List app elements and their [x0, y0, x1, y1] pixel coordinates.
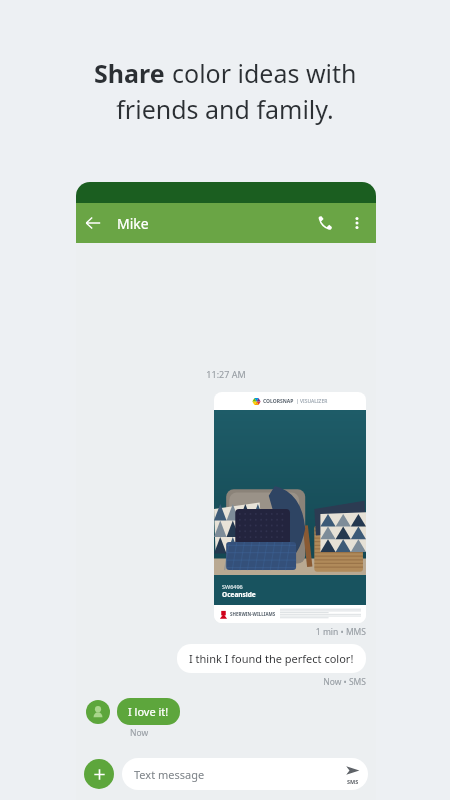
staticText: Share	[94, 56, 172, 90]
button[interactable]: I love it!	[117, 698, 180, 725]
staticText: Oceanside	[222, 590, 256, 599]
staticText: 1 min • MMS	[86, 626, 366, 638]
button[interactable]: More options	[342, 208, 372, 238]
button[interactable]: ColorSnap Visualizer photo	[214, 392, 366, 623]
button[interactable]: Text message	[122, 758, 368, 790]
staticText: friends and family.	[116, 92, 334, 126]
staticText: I love it!	[128, 704, 169, 719]
staticText: Mike	[117, 214, 149, 233]
staticText: SHERWIN-WILLIAMS	[230, 611, 276, 617]
staticText: | VISUALIZER	[296, 398, 328, 405]
button[interactable]: Call	[308, 206, 342, 240]
staticText: SMS	[347, 778, 359, 785]
button[interactable]: Add attachment	[84, 759, 114, 789]
staticText: SW6496	[222, 583, 243, 590]
staticText: COLORSNAP	[263, 398, 294, 405]
button[interactable]: Send SMS	[345, 763, 360, 785]
staticText: Now	[130, 727, 149, 739]
staticText: 11:27 AM	[86, 368, 366, 380]
button[interactable]: I think I found the perfect color!	[177, 644, 366, 673]
staticText: I think I found the perfect color!	[189, 651, 354, 666]
button[interactable]: Back	[76, 206, 110, 240]
staticText: color ideas with	[172, 56, 357, 90]
staticText: Now • SMS	[86, 676, 366, 688]
staticText: Text message	[134, 767, 205, 782]
